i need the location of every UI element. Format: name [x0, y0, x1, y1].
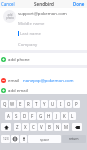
staticText: V [40, 124, 43, 130]
staticText: G [39, 113, 43, 119]
button[interactable]: X [22, 123, 29, 131]
button[interactable]: H [45, 112, 52, 120]
button[interactable]: add phone [0, 56, 87, 62]
button[interactable]: T [33, 100, 40, 108]
staticText: return [69, 137, 79, 141]
staticText: M [64, 124, 68, 130]
button[interactable]: I [57, 100, 64, 108]
button[interactable]: email [0, 77, 87, 83]
staticText: Y [43, 101, 46, 107]
staticText: space [40, 137, 50, 142]
staticText: support@pokemon.com [18, 10, 67, 16]
staticText: E [19, 101, 22, 107]
staticText: Z [16, 124, 19, 130]
button[interactable]: D [21, 112, 28, 120]
button[interactable]: K [61, 112, 68, 120]
staticText: N [56, 124, 60, 130]
staticText: Done [73, 1, 85, 7]
button[interactable]: M [62, 123, 69, 131]
button[interactable]: O [65, 100, 72, 108]
staticText: Cancel [1, 1, 15, 7]
button[interactable]: support@pokemon.com [0, 8, 87, 18]
staticText: C [32, 124, 35, 130]
button[interactable]: Done [71, 0, 87, 8]
staticText: H [47, 113, 51, 119]
button[interactable]: A [5, 112, 12, 120]
button[interactable]: N [54, 123, 61, 131]
staticText: S [15, 113, 18, 119]
button[interactable]: add photo [3, 10, 16, 23]
staticText: D [23, 113, 27, 119]
staticText: F [31, 113, 34, 119]
staticText: Middle name [18, 20, 45, 26]
staticText: Q [3, 101, 7, 107]
button[interactable]: C [30, 123, 37, 131]
staticText: add photo [6, 13, 14, 20]
staticText: X [24, 124, 27, 130]
button[interactable]: G [37, 112, 44, 120]
staticText: O [67, 101, 71, 107]
staticText: W [10, 101, 15, 107]
button[interactable]: W [9, 100, 16, 108]
button[interactable]: Q [1, 100, 8, 108]
staticText: R [27, 101, 30, 107]
button[interactable]: Dictate [20, 135, 27, 143]
staticText: P [75, 101, 78, 107]
staticText: add email [8, 87, 28, 93]
staticText: Company [18, 41, 38, 47]
button[interactable]: Switch keyboard [11, 135, 19, 143]
button[interactable]: Last name [0, 28, 87, 38]
button[interactable]: Backspace [72, 123, 82, 131]
staticText: Last name [20, 30, 41, 36]
button[interactable]: 123 [1, 135, 10, 143]
button[interactable]: S [13, 112, 20, 120]
button[interactable]: add email [0, 87, 87, 93]
staticText: L [71, 113, 74, 119]
staticText: B [48, 124, 51, 130]
staticText: nonepvp@pokemon.com [23, 77, 74, 83]
staticText: email [8, 77, 20, 83]
button[interactable]: L [69, 112, 76, 120]
button[interactable]: R [25, 100, 32, 108]
button[interactable]: P [73, 100, 80, 108]
button[interactable]: B [46, 123, 53, 131]
staticText: I [60, 101, 62, 107]
staticText: A [7, 113, 10, 119]
staticText: 123 [3, 137, 9, 141]
staticText: Sendbird [34, 1, 54, 7]
staticText: U [51, 101, 55, 107]
button[interactable]: U [49, 100, 56, 108]
button[interactable]: Z [14, 123, 21, 131]
button[interactable]: return [62, 135, 86, 143]
button[interactable]: space [28, 135, 61, 143]
button[interactable]: V [38, 123, 45, 131]
button[interactable]: Shift [1, 123, 11, 131]
staticText: T [35, 101, 38, 107]
button[interactable]: Company [0, 38, 87, 49]
button[interactable]: Cancel [0, 0, 17, 8]
staticText: add phone [8, 56, 30, 62]
button[interactable]: Y [41, 100, 48, 108]
staticText: J [56, 113, 58, 119]
button[interactable]: Middle name [0, 18, 87, 28]
button[interactable]: J [53, 112, 60, 120]
button[interactable]: E [17, 100, 24, 108]
staticText: K [63, 113, 66, 119]
button[interactable]: F [29, 112, 36, 120]
